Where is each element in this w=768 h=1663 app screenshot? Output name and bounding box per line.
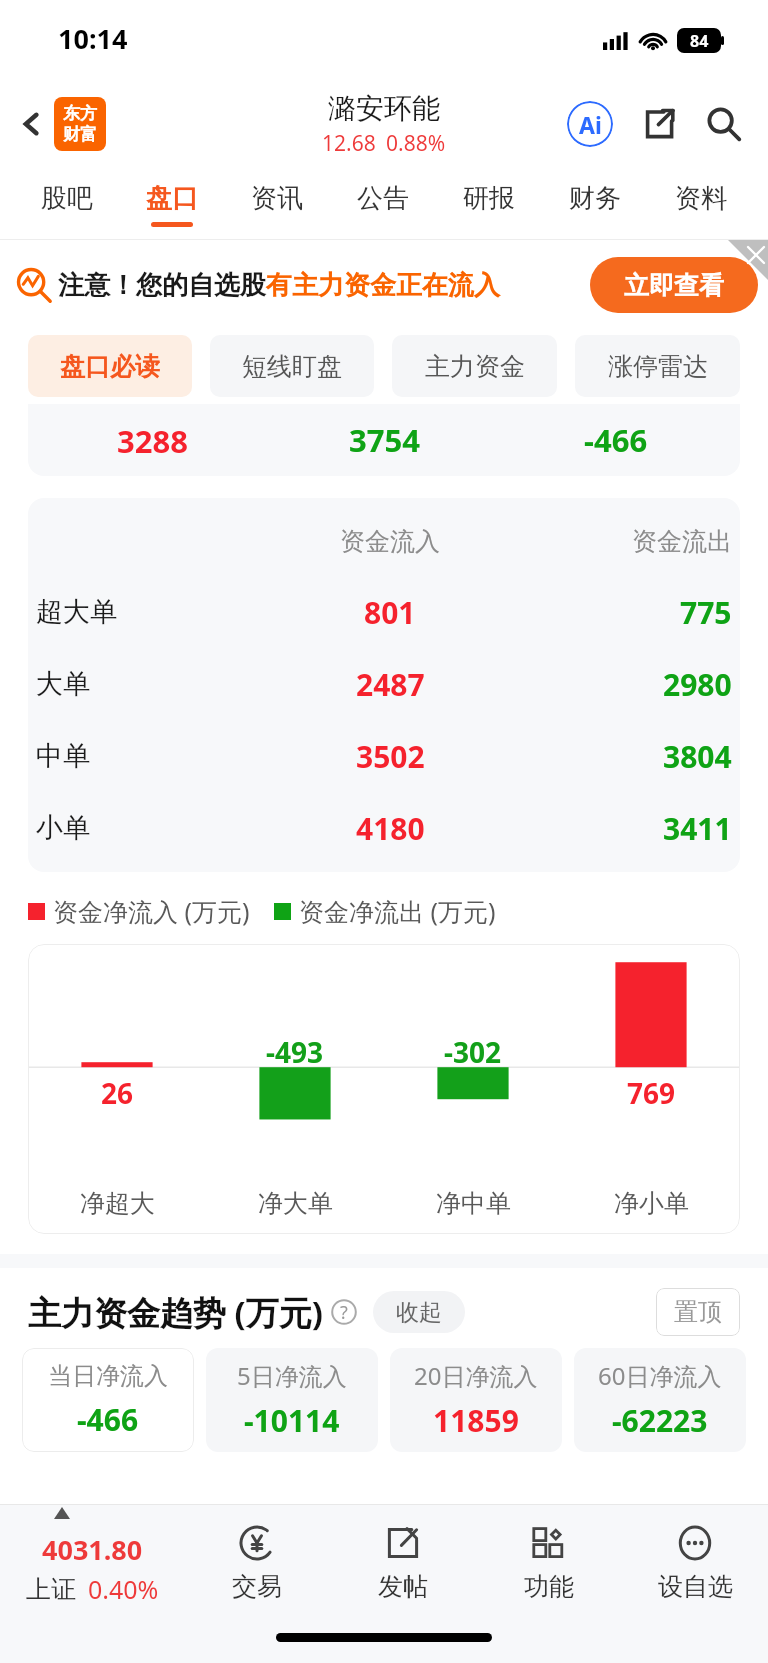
staticText: 有主力资金正在流入 [266,269,500,302]
button[interactable]: 财务 [542,168,648,240]
button[interactable]: 主力资金 [392,335,557,397]
button[interactable]: 研报 [436,168,542,240]
staticText: 您的自选股 [136,269,266,302]
staticText: 26 [101,1074,134,1112]
staticText: 资金流入 [340,526,440,557]
staticText: -466 [584,419,648,461]
button[interactable]: 当日净流入 [22,1348,194,1452]
staticText: 研报 [463,182,515,215]
staticText: 3804 [663,736,732,777]
staticText: 净大单 [258,1188,333,1219]
button[interactable]: 设自选 [622,1504,768,1620]
staticText: 资金净流出 (万元) [299,894,496,928]
button[interactable]: Help [329,1297,359,1327]
staticText: 净中单 [436,1188,511,1219]
staticText: -10114 [244,1400,340,1441]
button[interactable]: 资料 [648,168,754,240]
staticText: 11859 [433,1400,519,1441]
staticText: 股吧 [41,182,93,215]
staticText: 潞安环能 [328,91,440,126]
staticText: 净超大 [80,1188,155,1219]
button[interactable]: 收起 [373,1291,465,1333]
staticText: 短线盯盘 [242,351,342,382]
staticText: 60日净流入 [598,1359,722,1392]
staticText: 财务 [569,182,621,215]
staticText: 财富 [63,124,97,145]
staticText: 交易 [232,1571,282,1602]
staticText: 涨停雷达 [608,351,708,382]
button[interactable]: 小单 [36,792,732,864]
staticText: 20日净流入 [414,1359,538,1392]
staticText: 资金净流入 (万元) [53,894,250,928]
staticText: 2980 [663,664,732,705]
staticText: 立即查看 [624,270,724,301]
staticText: 3411 [663,808,732,849]
staticText: 5日净流入 [237,1359,347,1392]
button[interactable]: 4031.80 [0,1504,184,1620]
staticText: 上证 [26,1574,76,1605]
button[interactable]: 涨停雷达 [575,335,740,397]
staticText: 2487 [356,664,425,705]
staticText: 3502 [356,736,425,777]
staticText: 置顶 [674,1297,722,1327]
button[interactable]: 盘口 [119,168,224,240]
staticText: 3288 [117,420,188,462]
button[interactable]: 5日净流入 [206,1348,378,1452]
button[interactable]: Search [698,98,750,150]
button[interactable]: 功能 [476,1504,622,1620]
staticText: 3754 [349,419,420,461]
button[interactable]: 立即查看 [590,257,758,313]
button[interactable]: 注意！ [0,240,768,330]
staticText: 资料 [675,182,727,215]
staticText: 主力资金趋势 (万元) [28,1290,323,1335]
staticText: 超大单 [36,595,117,629]
staticText: 资金流出 [632,526,732,557]
staticText: 发帖 [378,1571,428,1602]
button[interactable]: 大单 [36,648,732,720]
staticText: 小单 [36,811,90,845]
staticText: 收起 [396,1298,442,1327]
button[interactable]: 发帖 [330,1504,476,1620]
staticText: 4180 [356,808,425,849]
staticText: 801 [364,592,416,633]
button[interactable]: 60日净流入 [574,1348,746,1452]
staticText: -302 [444,1033,502,1071]
staticText: 东方 [63,103,97,124]
staticText: 当日净流入 [48,1361,168,1391]
staticText: -466 [77,1399,139,1440]
staticText: 0.40% [88,1572,159,1606]
button[interactable]: 超大单 [36,576,732,648]
staticText: 盘口必读 [60,351,160,382]
button[interactable]: 短线盯盘 [210,335,374,397]
staticText: -493 [266,1033,324,1071]
staticText: 资讯 [251,182,303,215]
staticText: -62223 [612,1400,708,1441]
staticText: 769 [627,1074,676,1112]
button[interactable]: Share [634,99,684,149]
button[interactable]: 交易 [184,1504,330,1620]
button[interactable]: AI [564,98,616,150]
button[interactable]: Back [8,100,56,148]
staticText: 大单 [36,667,90,701]
button[interactable]: 股吧 [14,168,119,240]
staticText: 0.88% [386,129,446,158]
button[interactable]: Close [728,240,768,280]
staticText: 84 [690,30,709,52]
staticText: 净小单 [614,1188,689,1219]
staticText: 主力资金 [425,351,525,382]
staticText: 775 [680,592,732,633]
staticText: 4031.80 [42,1531,143,1568]
button[interactable]: 盘口必读 [28,335,192,397]
staticText: 功能 [524,1571,574,1602]
button[interactable]: 置顶 [656,1288,740,1336]
staticText: Ai [579,109,602,140]
button[interactable]: 资讯 [224,168,330,240]
button[interactable]: 中单 [36,720,732,792]
button[interactable]: 东方 [54,97,106,151]
button[interactable]: 公告 [330,168,436,240]
button[interactable]: 20日净流入 [390,1348,562,1452]
staticText: 盘口 [146,182,198,215]
staticText: 注意！ [58,269,136,302]
staticText: 12.68 [322,129,376,158]
staticText: ? [340,1300,348,1325]
